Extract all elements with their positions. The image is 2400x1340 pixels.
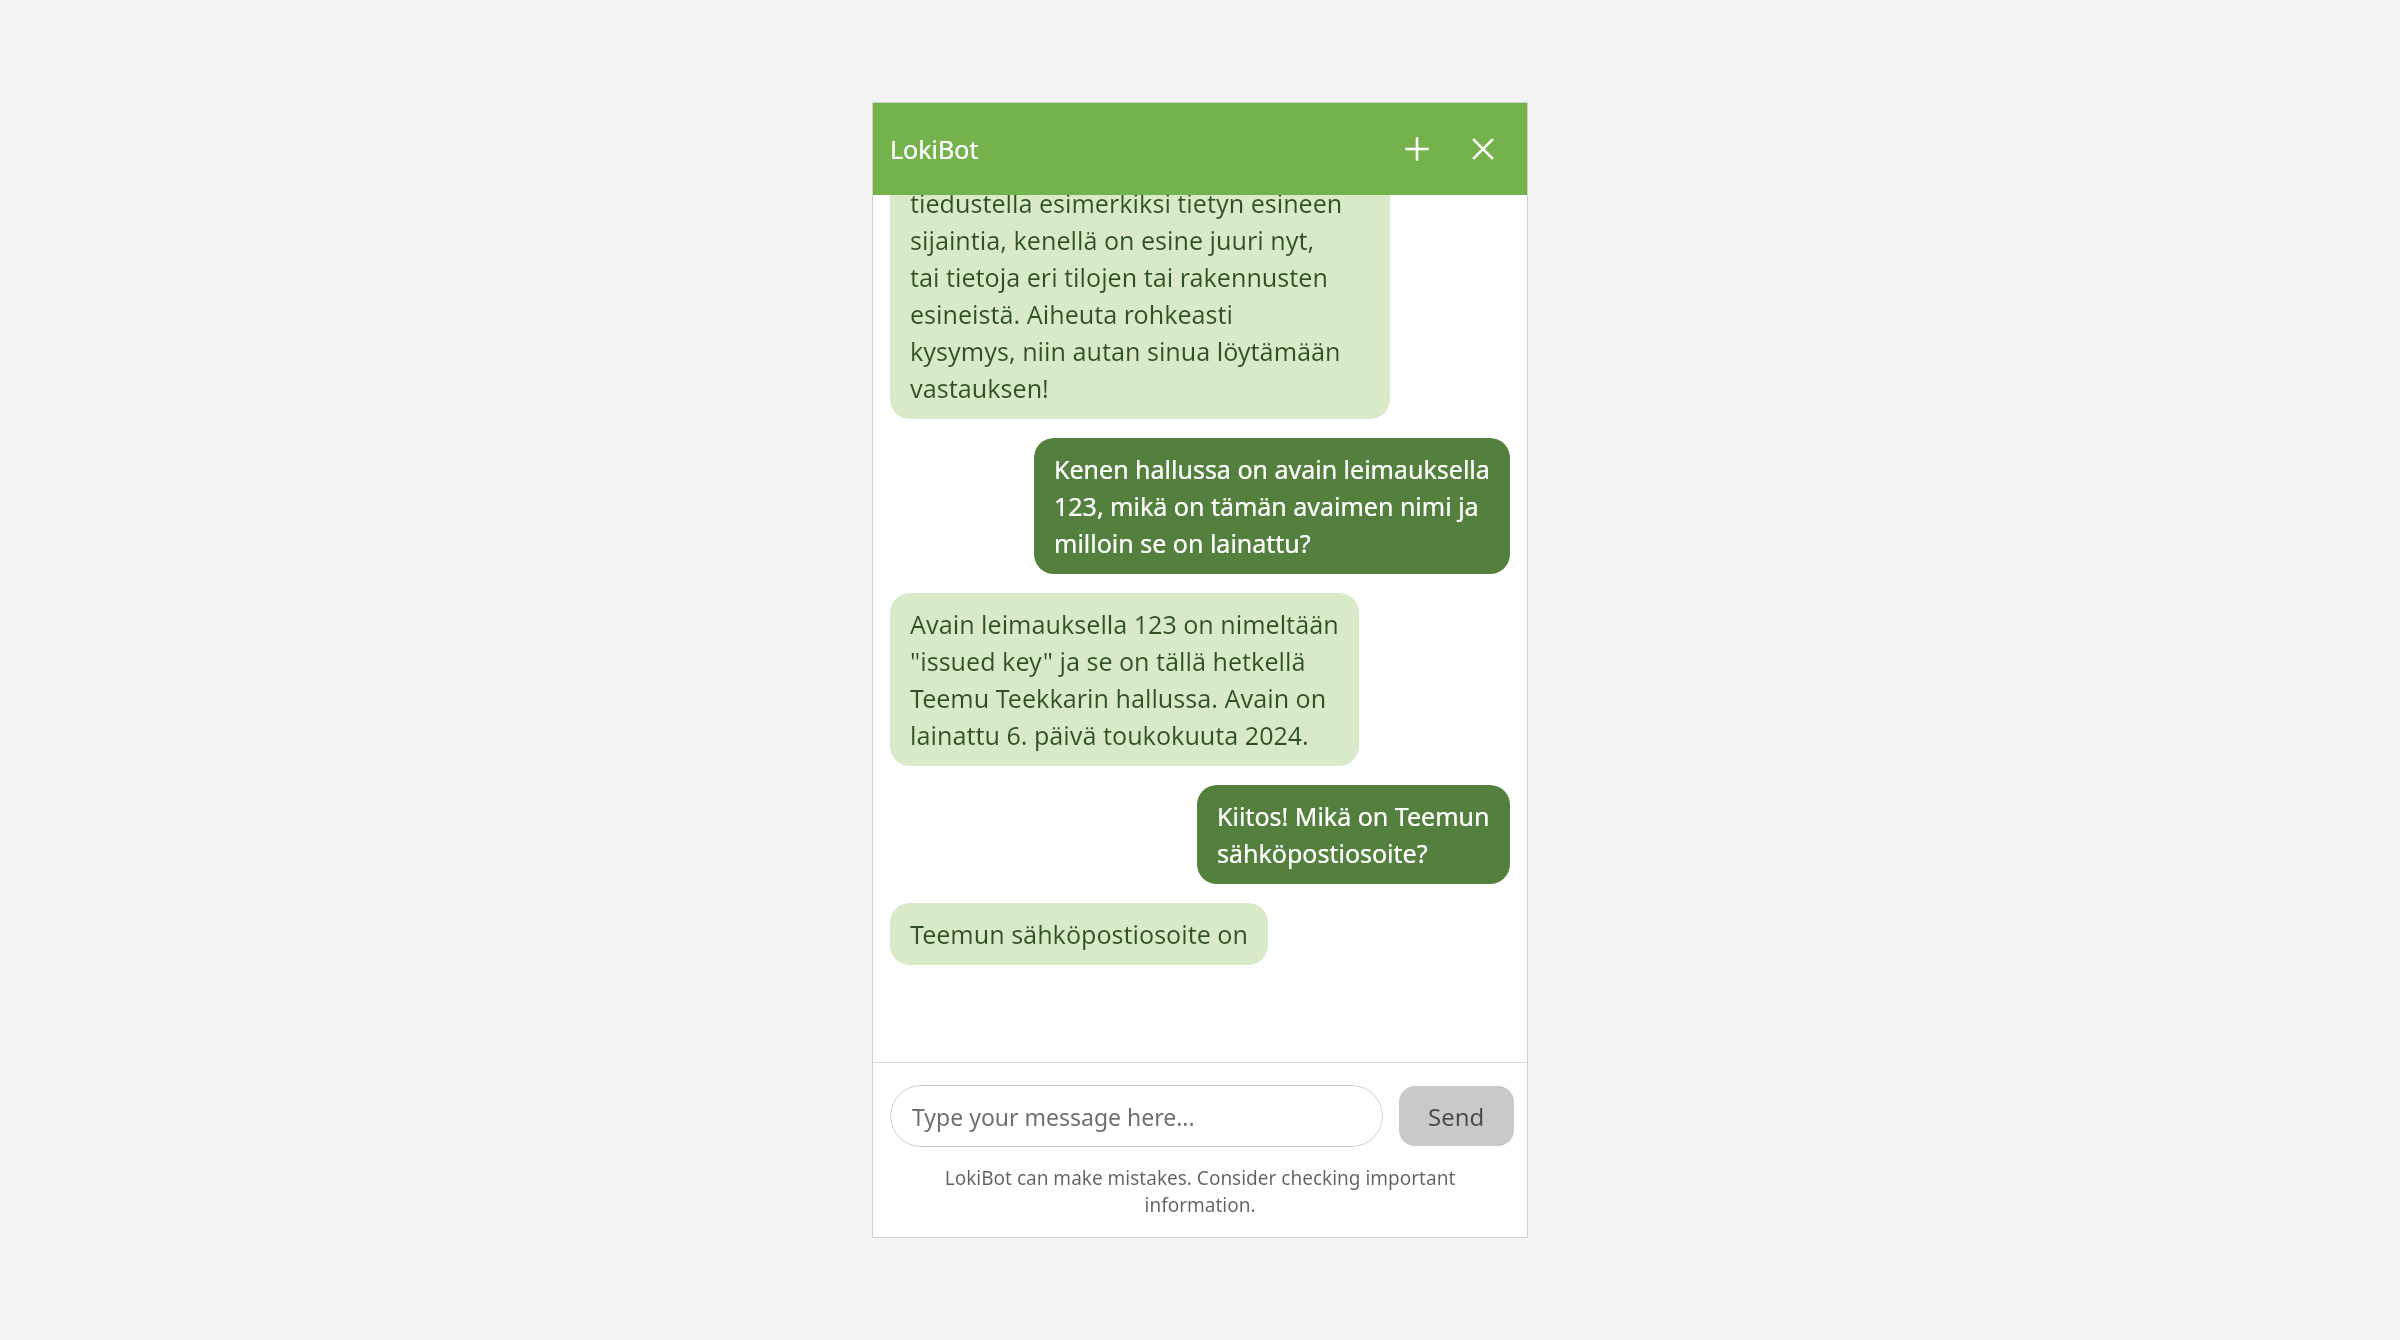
- staticText: Kenen hallussa on avain leimauksella 123…: [1054, 452, 1490, 560]
- button[interactable]: Moikka! Olen LokiBot. Voit kysyä minulta…: [890, 195, 1390, 419]
- button[interactable]: New chat: [1394, 126, 1440, 172]
- staticText: LokiBot: [890, 132, 979, 166]
- button[interactable]: Type your message here...: [890, 1085, 1383, 1147]
- button[interactable]: Close: [1460, 126, 1506, 172]
- button[interactable]: Kenen hallussa on avain leimauksella 123…: [1034, 438, 1510, 574]
- button[interactable]: Kiitos! Mikä on Teemun sähköpostiosoite?: [1197, 785, 1510, 884]
- staticText: Type your message here...: [912, 1101, 1195, 1132]
- staticText: Moikka! Olen LokiBot. Voit kysyä minulta…: [910, 195, 1370, 405]
- staticText: Teemun sähköpostiosoite on teemu.teekkar…: [910, 917, 1248, 951]
- button[interactable]: Avain leimauksella 123 on nimeltään "iss…: [890, 593, 1359, 766]
- button[interactable]: Send: [1399, 1086, 1514, 1146]
- button[interactable]: Teemun sähköpostiosoite on teemu.teekkar…: [890, 903, 1268, 965]
- staticText: Send: [1428, 1100, 1485, 1133]
- staticText: Kiitos! Mikä on Teemun sähköpostiosoite?: [1217, 799, 1490, 870]
- staticText: Avain leimauksella 123 on nimeltään "iss…: [910, 607, 1339, 752]
- staticText: LokiBot can make mistakes. Consider chec…: [910, 1165, 1490, 1218]
